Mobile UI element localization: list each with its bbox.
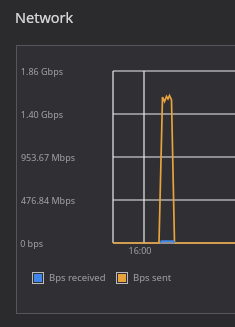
staticText: Network <box>15 7 74 27</box>
button[interactable]: Network <box>15 7 74 27</box>
staticText: 0 bps <box>20 237 43 249</box>
staticText: 953.67 Mbps <box>20 151 75 163</box>
staticText: 1.86 Gbps <box>20 65 63 77</box>
staticText: Bps sent <box>133 271 172 284</box>
staticText: 476.84 Mbps <box>20 194 75 206</box>
staticText: 1.40 Gbps <box>20 108 63 120</box>
button[interactable]: Bps sent <box>116 271 172 284</box>
staticText: 16:00 <box>128 244 152 256</box>
button[interactable] <box>16 45 235 314</box>
staticText: Bps received <box>49 271 106 284</box>
button[interactable]: Bps received <box>32 271 106 284</box>
